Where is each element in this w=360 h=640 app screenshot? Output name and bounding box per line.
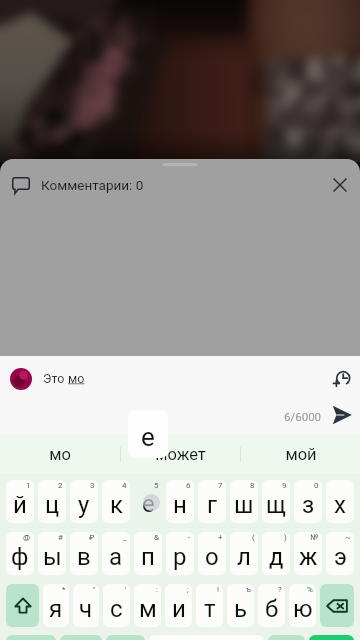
staticText: !	[217, 585, 220, 594]
staticText: 6/6000	[284, 410, 322, 423]
staticText: 1	[26, 481, 31, 490]
staticText: 0	[314, 481, 319, 490]
staticText: н	[173, 491, 187, 519]
staticText: а	[109, 543, 123, 571]
staticText: е	[142, 490, 155, 518]
button[interactable]: !	[196, 584, 223, 627]
staticText: ж	[299, 543, 318, 571]
button[interactable]: ;	[165, 584, 192, 627]
button[interactable]: мо	[0, 435, 120, 473]
button[interactable]: е	[134, 480, 162, 523]
staticText: р	[173, 543, 187, 571]
staticText: ш	[234, 491, 254, 519]
staticText: №	[310, 533, 319, 542]
button[interactable]: :	[134, 584, 161, 627]
staticText: мо	[68, 371, 85, 386]
staticText: "	[93, 585, 96, 594]
staticText: может	[155, 445, 206, 464]
staticText: ф	[11, 543, 29, 571]
staticText: з	[302, 491, 315, 519]
button[interactable]: *	[43, 584, 69, 627]
staticText: ю	[293, 595, 313, 623]
button[interactable]: ₽	[70, 532, 98, 575]
button[interactable]: 8	[230, 480, 258, 523]
button[interactable]: Закрыть	[326, 171, 354, 199]
button[interactable]: %	[289, 584, 316, 627]
button[interactable]: Shift	[6, 584, 39, 627]
staticText: ъ	[246, 585, 251, 594]
button[interactable]: мой	[241, 435, 360, 473]
button[interactable]: 7	[198, 480, 226, 523]
staticText: и	[172, 595, 186, 623]
staticText: 8	[250, 481, 255, 490]
staticText: ;	[187, 585, 189, 594]
button[interactable]: №	[294, 532, 322, 575]
button[interactable]: -	[166, 532, 194, 575]
button[interactable]: Точка	[268, 635, 305, 640]
staticText: @	[23, 533, 31, 542]
staticText: +	[218, 533, 223, 542]
staticText: (	[252, 533, 255, 542]
staticText: щ	[266, 491, 286, 519]
staticText: ~	[345, 533, 351, 542]
button[interactable]: #	[38, 532, 66, 575]
staticText: #	[58, 533, 63, 542]
button[interactable]: (	[230, 532, 258, 575]
staticText: ч	[79, 595, 93, 623]
button[interactable]: ~	[326, 532, 354, 575]
button[interactable]: 0	[294, 480, 322, 523]
button[interactable]: Язык ввода	[106, 635, 145, 640]
staticText: *	[62, 585, 66, 594]
staticText: ₽	[89, 533, 95, 542]
staticText: д	[269, 543, 284, 571]
button[interactable]: "	[73, 584, 99, 627]
button[interactable]: 2	[38, 480, 66, 523]
staticText: м	[139, 595, 157, 623]
staticText: 2	[58, 481, 63, 490]
button[interactable]: Удалить	[320, 584, 354, 627]
button[interactable]: 6	[166, 480, 194, 523]
button[interactable]: может	[121, 435, 240, 473]
button[interactable]: 1	[6, 480, 34, 523]
staticText: 7	[218, 481, 223, 490]
staticText: )	[284, 533, 287, 542]
staticText: э	[334, 543, 347, 571]
button[interactable]: )	[262, 532, 290, 575]
button[interactable]: ?	[258, 584, 285, 627]
button[interactable]: Профиль	[10, 368, 32, 390]
staticText: у	[78, 491, 90, 519]
staticText: с	[110, 595, 123, 623]
button[interactable]: Цифры	[6, 635, 56, 640]
staticText: 9	[282, 481, 287, 490]
button[interactable]: Ввод	[309, 635, 354, 640]
staticText: мой	[285, 445, 317, 464]
staticText: о	[205, 543, 219, 571]
staticText: -	[188, 533, 191, 542]
button[interactable]: 3	[70, 480, 98, 523]
button[interactable]: Отложенная публикация	[328, 366, 354, 392]
button[interactable]: 4	[102, 480, 130, 523]
staticText: &	[154, 533, 159, 542]
button[interactable]: _	[102, 532, 130, 575]
staticText: 3	[90, 481, 95, 490]
staticText: _	[123, 533, 127, 542]
staticText: т	[204, 595, 216, 623]
button[interactable]: Эмодзи	[60, 635, 102, 640]
staticText: к	[110, 491, 123, 519]
staticText: ц	[45, 491, 60, 519]
staticText: 5	[154, 481, 159, 490]
button[interactable]: Отправить	[329, 402, 355, 428]
button[interactable]: х	[326, 480, 354, 523]
button[interactable]: ъ	[227, 584, 254, 627]
staticText: б	[265, 595, 279, 623]
staticText: ?	[278, 585, 282, 594]
button[interactable]: @	[6, 532, 34, 575]
button[interactable]: 9	[262, 480, 290, 523]
button[interactable]: '	[103, 584, 130, 627]
staticText: Комментарии: 0	[41, 177, 144, 193]
staticText: л	[237, 543, 251, 571]
staticText: :	[156, 585, 158, 594]
button[interactable]: &	[134, 532, 162, 575]
button[interactable]: +	[198, 532, 226, 575]
